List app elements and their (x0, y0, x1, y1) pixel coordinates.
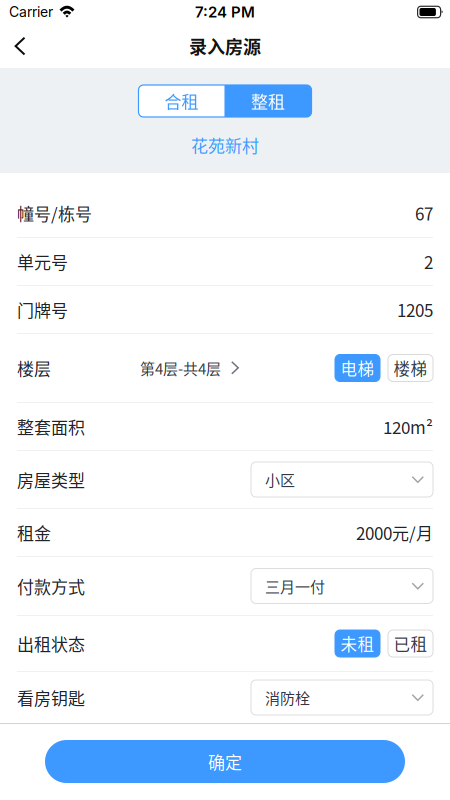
staticText: 未租 (340, 632, 374, 655)
staticText: 看房钥匙 (17, 685, 85, 710)
button[interactable]: 电梯 (335, 354, 380, 381)
button[interactable]: 三月一付 (251, 568, 433, 603)
staticText: 花苑新村 (191, 133, 259, 157)
staticText: 120m² (383, 414, 433, 439)
button[interactable]: 确定 (45, 740, 405, 783)
staticText: 楼层 (17, 356, 51, 380)
staticText: 小区 (265, 469, 295, 490)
button[interactable]: 未租 (335, 630, 380, 657)
staticText: 2 (424, 249, 433, 274)
button[interactable]: 消防栓 (251, 680, 433, 715)
staticText: 门牌号 (17, 297, 68, 322)
staticText: 整套面积 (17, 414, 85, 439)
button[interactable]: 整租 (224, 85, 311, 117)
staticText: Carrier (9, 3, 53, 20)
staticText: 合租 (164, 89, 198, 113)
staticText: 整租 (251, 89, 285, 113)
staticText: 三月一付 (265, 575, 325, 597)
staticText: 付款方式 (17, 574, 85, 598)
button[interactable]: 小区 (251, 462, 433, 497)
staticText: 确定 (208, 749, 242, 774)
button[interactable]: Back (0, 24, 42, 67)
staticText: 7:24 PM (195, 3, 255, 21)
staticText: 第4层-共4层 (140, 357, 221, 379)
staticText: 单元号 (17, 249, 68, 274)
staticText: 楼梯 (393, 356, 427, 380)
staticText: 消防栓 (265, 687, 310, 708)
staticText: 已租 (393, 632, 427, 655)
button[interactable]: 已租 (388, 630, 433, 657)
staticText: 1205 (397, 297, 433, 322)
staticText: 2000元/月 (356, 520, 433, 545)
button[interactable]: 楼梯 (388, 354, 433, 381)
button[interactable]: 第4层-共4层 (140, 357, 239, 379)
button[interactable]: 合租 (138, 85, 224, 117)
staticText: 67 (415, 201, 433, 225)
staticText: 房屋类型 (17, 467, 85, 492)
button[interactable]: 花苑新村 (191, 133, 259, 157)
staticText: 租金 (17, 520, 51, 545)
staticText: 幢号/栋号 (17, 201, 92, 225)
staticText: 录入房源 (189, 33, 261, 59)
staticText: 出租状态 (17, 631, 85, 656)
staticText: 电梯 (340, 356, 374, 380)
